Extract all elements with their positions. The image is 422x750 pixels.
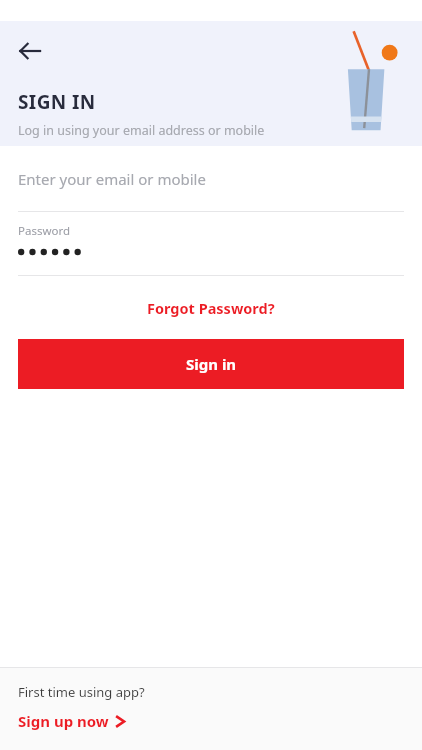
staticText: Forgot Password? — [147, 298, 275, 318]
button[interactable]: Back — [8, 29, 52, 73]
button[interactable]: Enter your email or mobile — [0, 146, 422, 211]
staticText: Sign in — [186, 354, 237, 374]
staticText: Sign up now — [18, 711, 109, 731]
button[interactable]: Forgot Password? — [135, 290, 287, 326]
staticText: First time using app? — [18, 683, 145, 701]
staticText: Password — [18, 223, 71, 239]
staticText: SIGN IN — [18, 89, 96, 115]
staticText: Log in using your email address or mobil… — [18, 122, 265, 139]
button[interactable]: Sign up now — [18, 711, 126, 731]
staticText: Enter your email or mobile — [18, 169, 206, 189]
button[interactable]: Password — [0, 212, 422, 275]
button[interactable]: Sign in — [18, 339, 404, 389]
